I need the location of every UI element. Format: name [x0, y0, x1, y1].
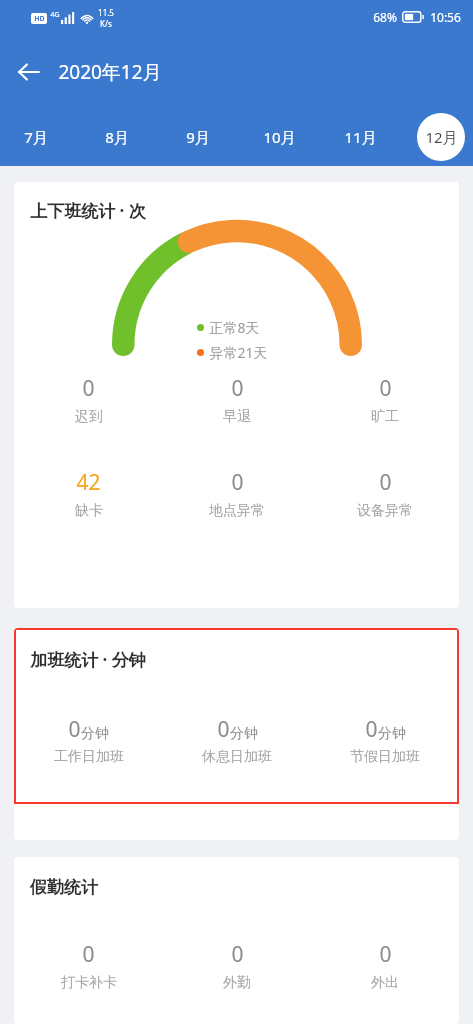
staticText: 0	[82, 374, 95, 403]
button[interactable]: 上下班统计 · 次	[14, 182, 459, 608]
staticText: 0	[231, 374, 244, 403]
staticText: 0	[231, 468, 244, 497]
button[interactable]: 0	[163, 374, 311, 426]
staticText: 0	[82, 940, 95, 969]
staticText: 0	[231, 940, 244, 969]
staticText: 节假日加班	[350, 748, 420, 766]
staticText: 0	[379, 374, 392, 403]
staticText: 11月	[344, 127, 377, 147]
staticText: 分钟	[81, 725, 109, 743]
staticText: 0	[217, 715, 230, 744]
staticText: 8月	[105, 127, 129, 147]
button[interactable]: Back	[8, 51, 50, 93]
staticText: 0	[379, 468, 392, 497]
staticText: 正常8天	[209, 318, 260, 337]
staticText: 2020年12月	[58, 59, 162, 85]
staticText: 0	[365, 715, 378, 744]
staticText: 10月	[263, 127, 296, 147]
button[interactable]: 12月	[417, 113, 465, 161]
staticText: 外出	[371, 974, 399, 992]
staticText: 假勤统计	[30, 877, 98, 898]
button[interactable]: 加班统计 · 分钟	[14, 628, 459, 840]
staticText: 11.5	[98, 7, 114, 18]
button[interactable]: 10月	[255, 113, 303, 161]
staticText: 上下班统计 · 次	[30, 199, 146, 222]
button[interactable]: 7月	[12, 113, 60, 161]
staticText: 4G	[50, 10, 60, 20]
button[interactable]: 8月	[93, 113, 141, 161]
staticText: HD	[34, 14, 45, 24]
staticText: 缺卡	[75, 502, 103, 520]
staticText: 旷工	[371, 408, 399, 426]
button[interactable]: 42	[14, 468, 163, 520]
button[interactable]: 0	[163, 940, 311, 992]
staticText: 加班统计 · 分钟	[30, 648, 146, 671]
staticText: 打卡补卡	[61, 974, 117, 992]
staticText: 68%	[373, 9, 397, 25]
button[interactable]: 0	[163, 468, 311, 520]
staticText: 外勤	[223, 974, 251, 992]
staticText: 分钟	[230, 725, 258, 743]
button[interactable]: 11月	[336, 113, 384, 161]
staticText: 地点异常	[209, 502, 265, 520]
button[interactable]: 0	[14, 715, 163, 766]
staticText: 迟到	[75, 408, 103, 426]
staticText: 7月	[24, 127, 48, 147]
staticText: 早退	[223, 408, 251, 426]
button[interactable]: 0	[311, 468, 459, 520]
button[interactable]: 9月	[174, 113, 222, 161]
staticText: 0	[68, 715, 81, 744]
staticText: 42	[76, 468, 101, 497]
staticText: K/s	[100, 18, 112, 29]
staticText: 0	[379, 940, 392, 969]
staticText: 10:56	[430, 9, 461, 25]
staticText: 12月	[425, 127, 458, 147]
button[interactable]: 0	[14, 374, 163, 426]
button[interactable]: 0	[311, 940, 459, 992]
staticText: 休息日加班	[202, 748, 272, 766]
staticText: 工作日加班	[54, 748, 124, 766]
button[interactable]: 0	[311, 715, 459, 766]
staticText: 设备异常	[357, 502, 413, 520]
staticText: 9月	[186, 127, 210, 147]
button[interactable]: 0	[311, 374, 459, 426]
button[interactable]: 0	[14, 940, 163, 992]
button[interactable]: 0	[163, 715, 311, 766]
staticText: 分钟	[378, 725, 406, 743]
staticText: 异常21天	[209, 343, 268, 362]
button[interactable]: 假勤统计	[14, 857, 459, 1024]
